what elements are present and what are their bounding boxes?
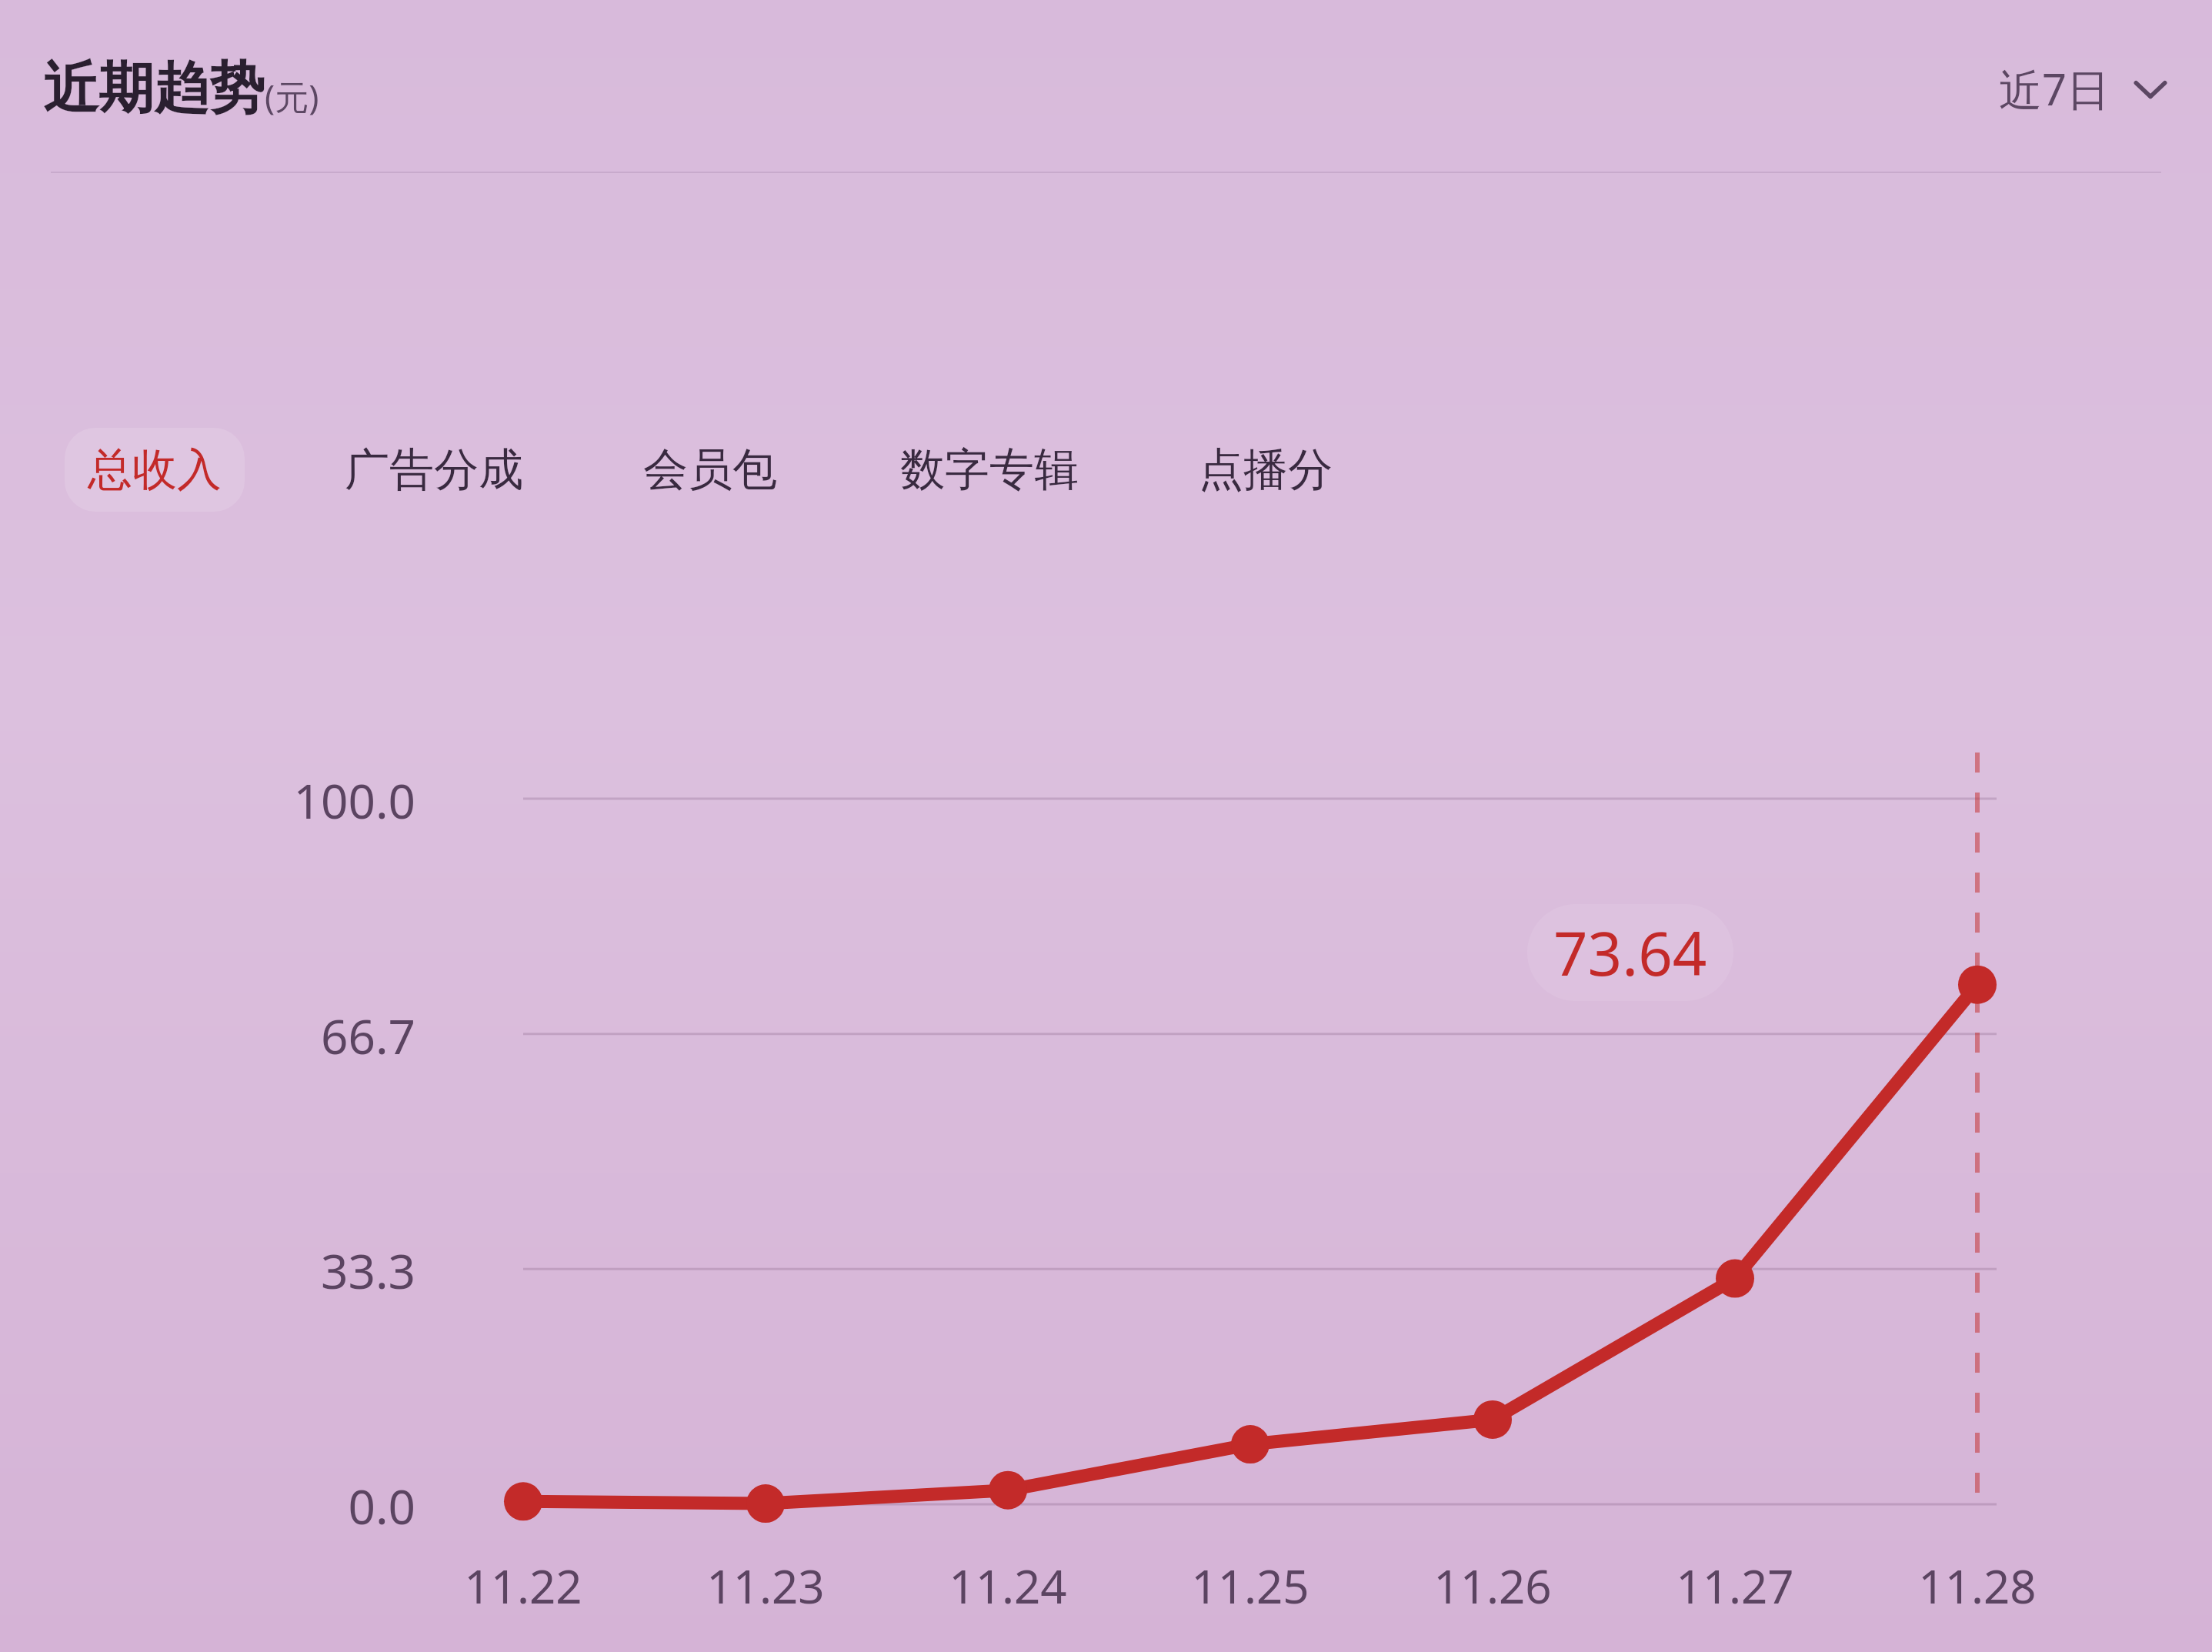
staticText: 11.27	[1620, 1554, 1850, 1617]
staticText: 近期趋势	[43, 54, 265, 124]
staticText: 会员包	[643, 442, 777, 498]
staticText: 11.28	[1862, 1554, 2093, 1617]
staticText: 11.22	[408, 1554, 639, 1617]
staticText: 广告分成	[345, 442, 523, 498]
button[interactable]: 会员包	[620, 428, 800, 512]
staticText: 11.23	[650, 1554, 881, 1617]
button[interactable]: 广告分成	[322, 428, 546, 512]
staticText: (元)	[265, 73, 319, 119]
staticText: 100.0	[0, 768, 415, 833]
staticText: 11.24	[892, 1554, 1123, 1617]
button[interactable]: 数字专辑	[877, 428, 1102, 512]
button[interactable]: 总收入	[65, 428, 245, 512]
staticText: 点播分	[1199, 442, 1333, 498]
staticText: 73.64	[1553, 912, 1707, 993]
staticText: 33.3	[0, 1238, 415, 1303]
button[interactable]: 点播分	[1176, 428, 1356, 512]
staticText: 总收入	[88, 442, 222, 498]
button[interactable]: 近7日	[1988, 50, 2181, 127]
staticText: 0.0	[0, 1473, 415, 1538]
staticText: 近7日	[1999, 59, 2110, 118]
other: Change date range	[2130, 68, 2170, 108]
staticText: 66.7	[0, 1003, 415, 1068]
staticText: 11.25	[1135, 1554, 1366, 1617]
staticText: 11.26	[1377, 1554, 1608, 1617]
staticText: 数字专辑	[900, 442, 1079, 498]
